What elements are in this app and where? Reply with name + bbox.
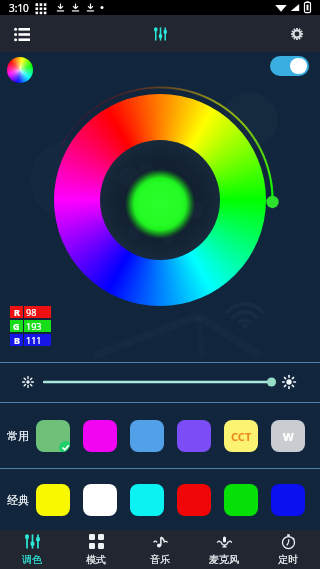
staticText: 调色 — [22, 553, 42, 566]
button[interactable]: Colour swatch — [177, 420, 211, 452]
staticText: 3:10 — [9, 1, 29, 15]
staticText: CCT — [231, 429, 252, 444]
button[interactable]: 麦克风 — [192, 530, 256, 569]
button[interactable]: Colour swatch — [36, 420, 70, 452]
button[interactable]: Color picker — [3, 53, 37, 87]
staticText: G — [13, 320, 20, 332]
button[interactable]: Colour swatch — [177, 484, 211, 516]
button[interactable]: 调色 — [0, 530, 64, 569]
staticText: 麦克风 — [209, 553, 239, 566]
button[interactable]: 定时 — [256, 530, 320, 569]
button[interactable]: Color adjust — [144, 18, 176, 50]
staticText: B — [14, 334, 20, 346]
staticText: 常用 — [7, 429, 29, 443]
button[interactable]: Colour swatch — [130, 420, 164, 452]
button[interactable]: Power toggle — [270, 56, 309, 76]
button[interactable]: Colour swatch — [83, 420, 117, 452]
button[interactable]: 模式 — [64, 530, 128, 569]
staticText: 模式 — [86, 553, 106, 566]
button[interactable]: 音乐 — [128, 530, 192, 569]
staticText: 音乐 — [150, 553, 170, 566]
button[interactable]: W — [271, 420, 305, 452]
staticText: 经典 — [7, 493, 29, 507]
button[interactable]: Settings — [281, 18, 313, 50]
staticText: 定时 — [278, 553, 298, 566]
button[interactable]: CCT — [224, 420, 258, 452]
button[interactable]: Colour swatch — [83, 484, 117, 516]
staticText: 193 — [26, 320, 42, 332]
button[interactable]: Brightness — [0, 363, 320, 402]
staticText: R — [14, 306, 20, 318]
button[interactable]: Colour swatch — [36, 484, 70, 516]
staticText: 111 — [26, 334, 42, 346]
button[interactable]: Menu — [6, 18, 38, 50]
button[interactable]: Colour swatch — [271, 484, 305, 516]
button[interactable]: Colour swatch — [130, 484, 164, 516]
button[interactable]: Colour swatch — [224, 484, 258, 516]
staticText: W — [283, 429, 294, 444]
staticText: 98 — [26, 306, 37, 318]
